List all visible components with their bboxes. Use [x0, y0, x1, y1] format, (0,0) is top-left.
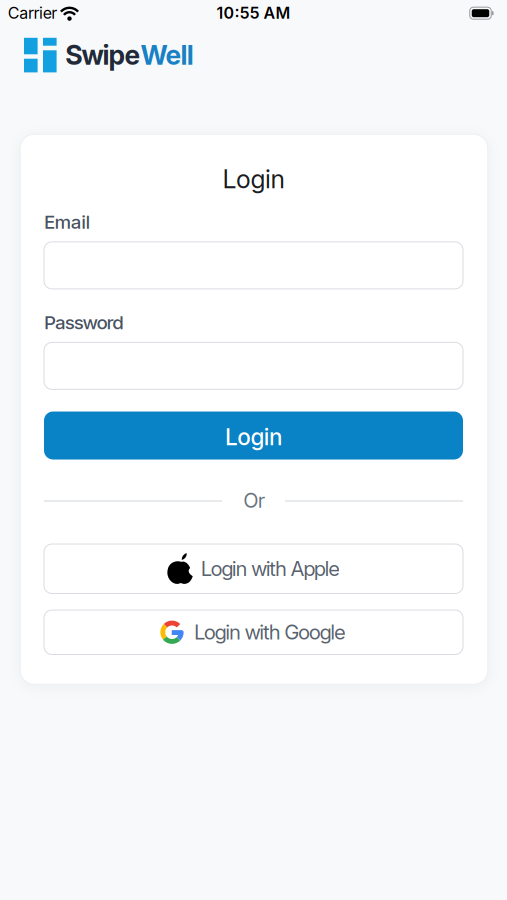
staticText: 10:55 AM — [216, 3, 290, 23]
staticText: Login with Apple — [201, 556, 340, 581]
button[interactable]: Login — [44, 411, 463, 459]
staticText: Password — [44, 311, 124, 334]
button[interactable]: Login with Apple — [44, 544, 463, 593]
staticText: Well — [140, 39, 194, 71]
button[interactable]: Login with Google — [44, 610, 463, 654]
staticText: Login — [223, 164, 284, 194]
staticText: Or — [243, 488, 265, 513]
staticText: Email — [44, 211, 91, 233]
staticText: Swipe — [65, 39, 140, 71]
staticText: Login — [225, 423, 282, 451]
staticText: Carrier — [8, 3, 57, 23]
staticText: Login with Google — [194, 620, 346, 644]
